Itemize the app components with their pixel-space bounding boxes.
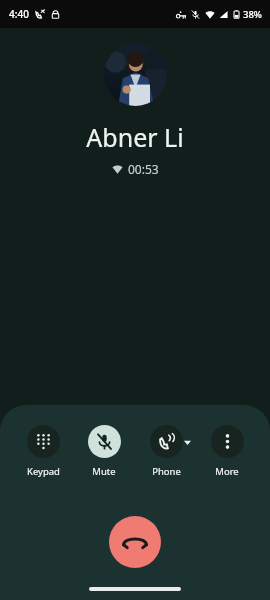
staticText: More — [215, 465, 239, 478]
staticText: 4:40 — [9, 7, 29, 21]
button[interactable]: End call — [109, 516, 161, 568]
staticText: Abner Li — [0, 120, 270, 154]
button[interactable]: More — [199, 425, 255, 478]
staticText: 38% — [243, 8, 262, 21]
staticText: Keypad — [27, 465, 60, 478]
button[interactable]: Mute — [76, 425, 132, 478]
button[interactable]: Phone — [138, 425, 194, 478]
button[interactable]: Keypad — [15, 425, 71, 478]
staticText: Mute — [92, 465, 116, 478]
staticText: Phone — [152, 465, 181, 478]
staticText: 00:53 — [128, 161, 159, 177]
